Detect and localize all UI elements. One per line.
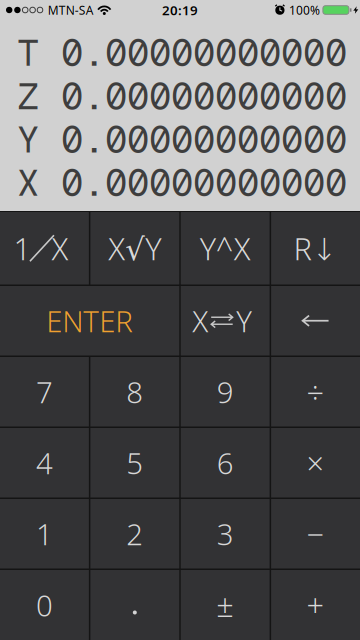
button[interactable]: 3: [181, 499, 270, 568]
button[interactable]: 8: [90, 357, 179, 426]
staticText: +: [307, 585, 325, 625]
staticText: MTN-SA: [48, 2, 94, 18]
button[interactable]: 0: [0, 570, 89, 640]
staticText: X: [192, 301, 208, 340]
button[interactable]: ×: [271, 428, 360, 497]
button[interactable]: +: [271, 570, 360, 640]
button[interactable]: 9: [181, 357, 270, 426]
button[interactable]: X√Y: [90, 212, 179, 284]
staticText: X: [51, 228, 68, 269]
staticText: 2: [126, 514, 143, 553]
staticText: Y 0.00000000000: [17, 116, 347, 163]
staticText: 3: [217, 514, 234, 553]
button[interactable]: Backspace: [271, 286, 360, 355]
button[interactable]: 2: [90, 499, 179, 568]
staticText: 1: [13, 228, 31, 269]
staticText: Z 0.00000000000: [17, 72, 347, 120]
staticText: ×: [307, 442, 325, 483]
button[interactable]: Decimal point: [90, 570, 179, 640]
staticText: T 0.00000000000: [17, 29, 347, 76]
staticText: −: [307, 513, 325, 554]
staticText: ÷: [307, 371, 325, 412]
staticText: X 0.00000000000: [17, 159, 347, 206]
staticText: ENTER: [46, 301, 133, 340]
button[interactable]: 7: [0, 357, 89, 426]
button[interactable]: −: [271, 499, 360, 568]
button[interactable]: R↓: [271, 212, 360, 284]
button[interactable]: 4: [0, 428, 89, 497]
staticText: X√Y: [108, 228, 161, 269]
staticText: 0: [36, 585, 53, 624]
staticText: ±: [216, 585, 234, 625]
staticText: 100%: [289, 2, 320, 18]
button[interactable]: Swap X and Y: [181, 286, 270, 355]
button[interactable]: ENTER: [0, 286, 179, 355]
staticText: 4: [36, 443, 53, 482]
button[interactable]: 6: [181, 428, 270, 497]
staticText: 7: [36, 372, 53, 411]
staticText: Y: [236, 301, 252, 340]
button[interactable]: ÷: [271, 357, 360, 426]
staticText: 5: [126, 443, 143, 482]
staticText: 6: [217, 443, 234, 482]
button[interactable]: 5: [90, 428, 179, 497]
button[interactable]: Reciprocal: [0, 212, 89, 284]
button[interactable]: 1: [0, 499, 89, 568]
button[interactable]: ±: [181, 570, 270, 640]
button[interactable]: Y^X: [181, 212, 270, 284]
staticText: 1: [36, 514, 53, 553]
staticText: 8: [126, 372, 143, 411]
staticText: 20:19: [162, 1, 198, 19]
staticText: Y^X: [200, 228, 251, 269]
staticText: 9: [217, 372, 234, 411]
staticText: R↓: [294, 228, 338, 269]
